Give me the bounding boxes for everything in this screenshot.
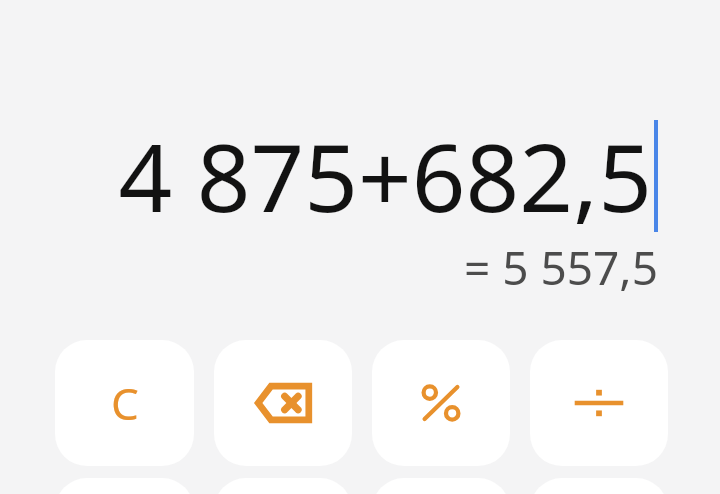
button[interactable]	[530, 478, 668, 494]
staticText: = 5 557,5	[463, 236, 658, 299]
button[interactable]	[55, 478, 194, 494]
staticText: 4 875+682,5	[118, 112, 652, 240]
button[interactable]	[214, 478, 352, 494]
button[interactable]	[372, 478, 510, 494]
button[interactable]: Percent	[372, 340, 510, 466]
staticText: C	[111, 373, 139, 433]
button[interactable]: Divide	[530, 340, 668, 466]
button[interactable]: Clear	[55, 340, 194, 466]
button[interactable]: Backspace	[214, 340, 352, 466]
